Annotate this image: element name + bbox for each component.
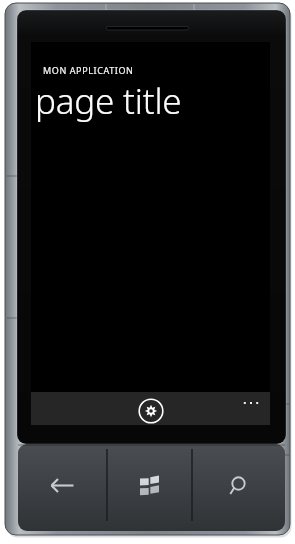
button[interactable]: More options	[238, 394, 264, 412]
button[interactable]: Search	[192, 444, 285, 531]
button[interactable]: Start	[107, 444, 192, 531]
staticText: page title	[35, 77, 182, 125]
button[interactable]: Back	[18, 444, 107, 531]
button[interactable]: Settings	[138, 398, 164, 424]
staticText: MON APPLICATION	[43, 64, 134, 76]
